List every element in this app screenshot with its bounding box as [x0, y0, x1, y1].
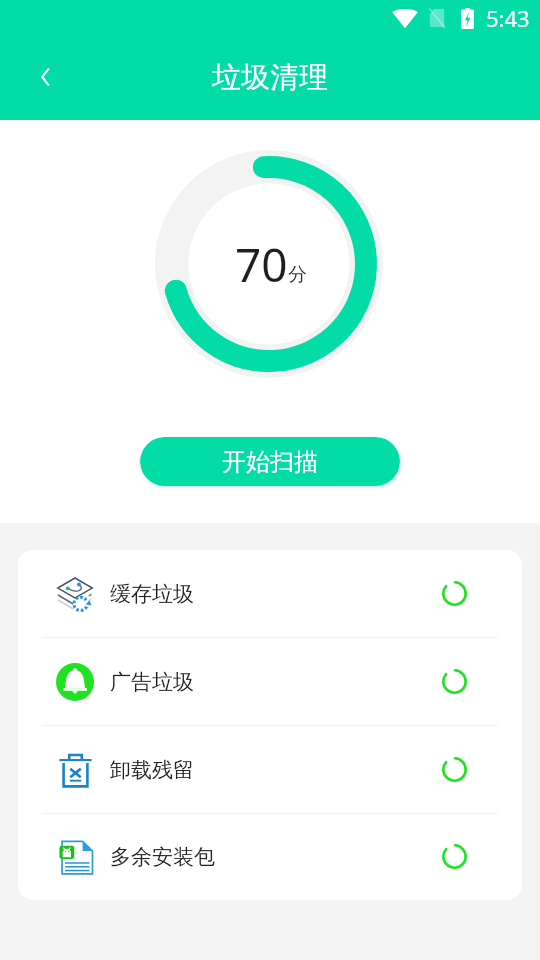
staticText: 70 — [235, 233, 288, 296]
staticText: 5:43 — [486, 3, 530, 33]
button[interactable]: 多余安装包 — [18, 814, 522, 900]
staticText: 广告垃圾 — [110, 669, 194, 695]
staticText: 多余安装包 — [110, 844, 215, 870]
staticText: 分 — [288, 263, 307, 287]
button[interactable]: Back — [21, 53, 69, 101]
button[interactable]: 广告垃圾 — [18, 638, 522, 726]
button[interactable]: 开始扫描 — [140, 437, 400, 486]
button[interactable]: 缓存垃圾 — [18, 550, 522, 638]
button[interactable]: 卸载残留 — [18, 726, 522, 814]
staticText: 垃圾清理 — [212, 59, 328, 96]
staticText: 开始扫描 — [222, 447, 318, 477]
staticText: 缓存垃圾 — [110, 581, 194, 607]
staticText: 卸载残留 — [110, 757, 194, 783]
